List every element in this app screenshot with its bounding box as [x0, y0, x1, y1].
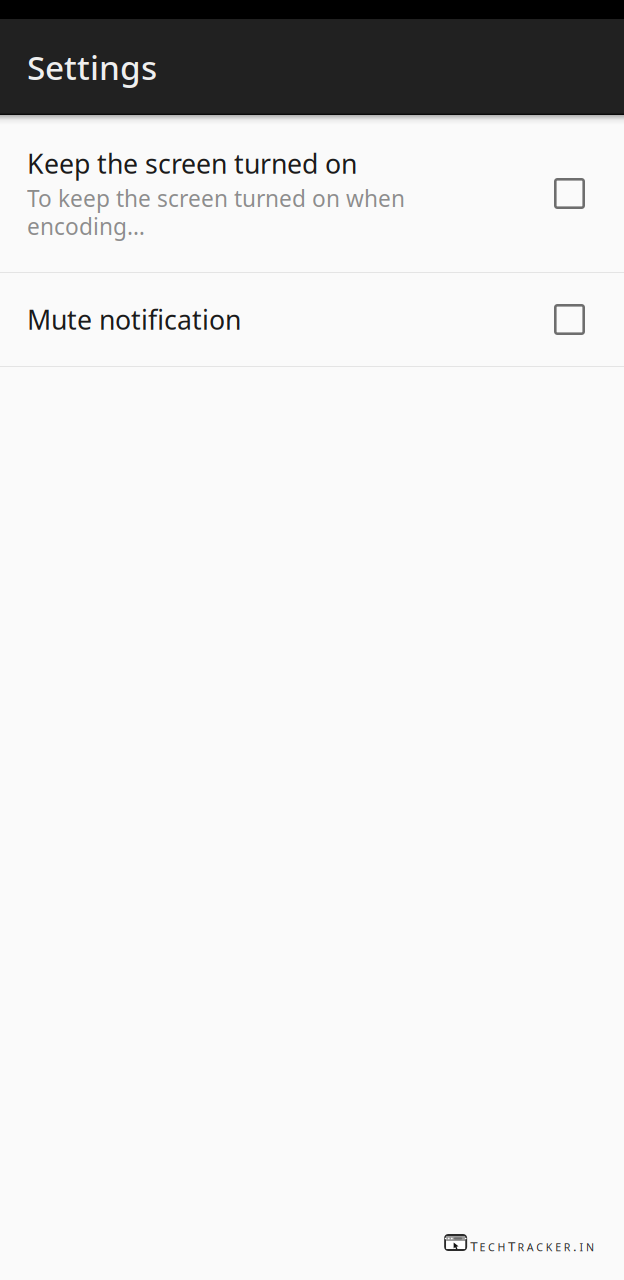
staticText: N — [586, 1240, 594, 1254]
staticText: C — [488, 1240, 495, 1254]
staticText: I — [579, 1240, 583, 1254]
button[interactable]: Keep the screen turned on — [0, 115, 624, 273]
staticText: To keep the screen turned on when encodi… — [27, 183, 405, 241]
staticText: Mute notification — [27, 302, 241, 337]
staticText: T — [508, 1237, 515, 1255]
staticText: Keep the screen turned on — [27, 146, 357, 181]
staticText: R — [517, 1240, 524, 1254]
staticText: H — [497, 1240, 505, 1254]
staticText: E — [480, 1240, 486, 1254]
staticText: C — [536, 1240, 543, 1254]
button[interactable]: Mute notification — [0, 273, 624, 367]
staticText: K — [546, 1240, 553, 1254]
staticText: . — [573, 1237, 577, 1255]
staticText: Settings — [27, 45, 157, 89]
staticText: A — [527, 1240, 534, 1254]
staticText: T — [470, 1237, 477, 1255]
staticText: R — [564, 1240, 571, 1254]
staticText: E — [555, 1240, 561, 1254]
